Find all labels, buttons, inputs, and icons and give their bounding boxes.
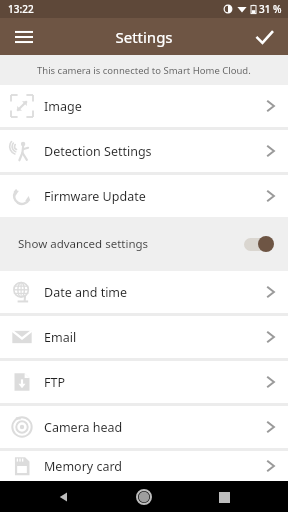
- staticText: Date and time: [44, 284, 252, 301]
- button[interactable]: Open navigation menu: [6, 19, 42, 55]
- button[interactable]: Show advanced settings: [0, 217, 288, 271]
- staticText: Image: [44, 98, 252, 115]
- staticText: 13:22: [8, 2, 34, 16]
- staticText: 31 %: [259, 2, 282, 16]
- button[interactable]: FTP: [0, 361, 288, 403]
- button[interactable]: Home: [130, 483, 158, 511]
- button[interactable]: Firmware Update: [0, 175, 288, 217]
- button[interactable]: Recent apps: [210, 483, 238, 511]
- button[interactable]: Email: [0, 316, 288, 358]
- button[interactable]: Confirm: [246, 19, 282, 55]
- staticText: Email: [44, 329, 252, 346]
- staticText: Settings: [115, 27, 173, 47]
- button[interactable]: Image: [0, 85, 288, 127]
- button[interactable]: Date and time: [0, 271, 288, 313]
- button[interactable]: Detection Settings: [0, 130, 288, 172]
- staticText: Firmware Update: [44, 188, 252, 205]
- staticText: FTP: [44, 374, 252, 391]
- button[interactable]: Memory card: [0, 451, 288, 481]
- button[interactable]: Back: [50, 483, 78, 511]
- staticText: Camera head: [44, 419, 252, 436]
- staticText: This camera is connected to Smart Home C…: [37, 64, 251, 77]
- button[interactable]: Camera head: [0, 406, 288, 448]
- staticText: Memory card: [44, 458, 252, 475]
- staticText: Show advanced settings: [18, 236, 242, 252]
- staticText: Detection Settings: [44, 143, 252, 160]
